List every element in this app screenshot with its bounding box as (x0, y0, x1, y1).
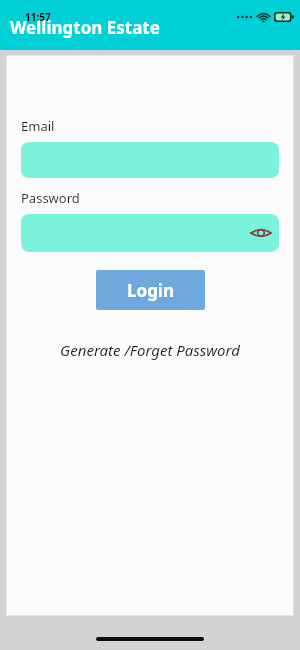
staticText: Login (127, 279, 175, 302)
button[interactable] (21, 142, 279, 178)
staticText: Wellington Estate (10, 16, 160, 39)
staticText: Password (21, 189, 80, 207)
staticText: 11:57 (25, 10, 51, 24)
button[interactable]: Login (96, 270, 205, 310)
button[interactable]: Show password (248, 220, 274, 246)
button[interactable]: Show password (21, 214, 279, 252)
staticText: Email (21, 117, 55, 135)
staticText: Generate /Forget Password (60, 340, 240, 360)
button[interactable]: Generate /Forget Password (21, 340, 279, 360)
